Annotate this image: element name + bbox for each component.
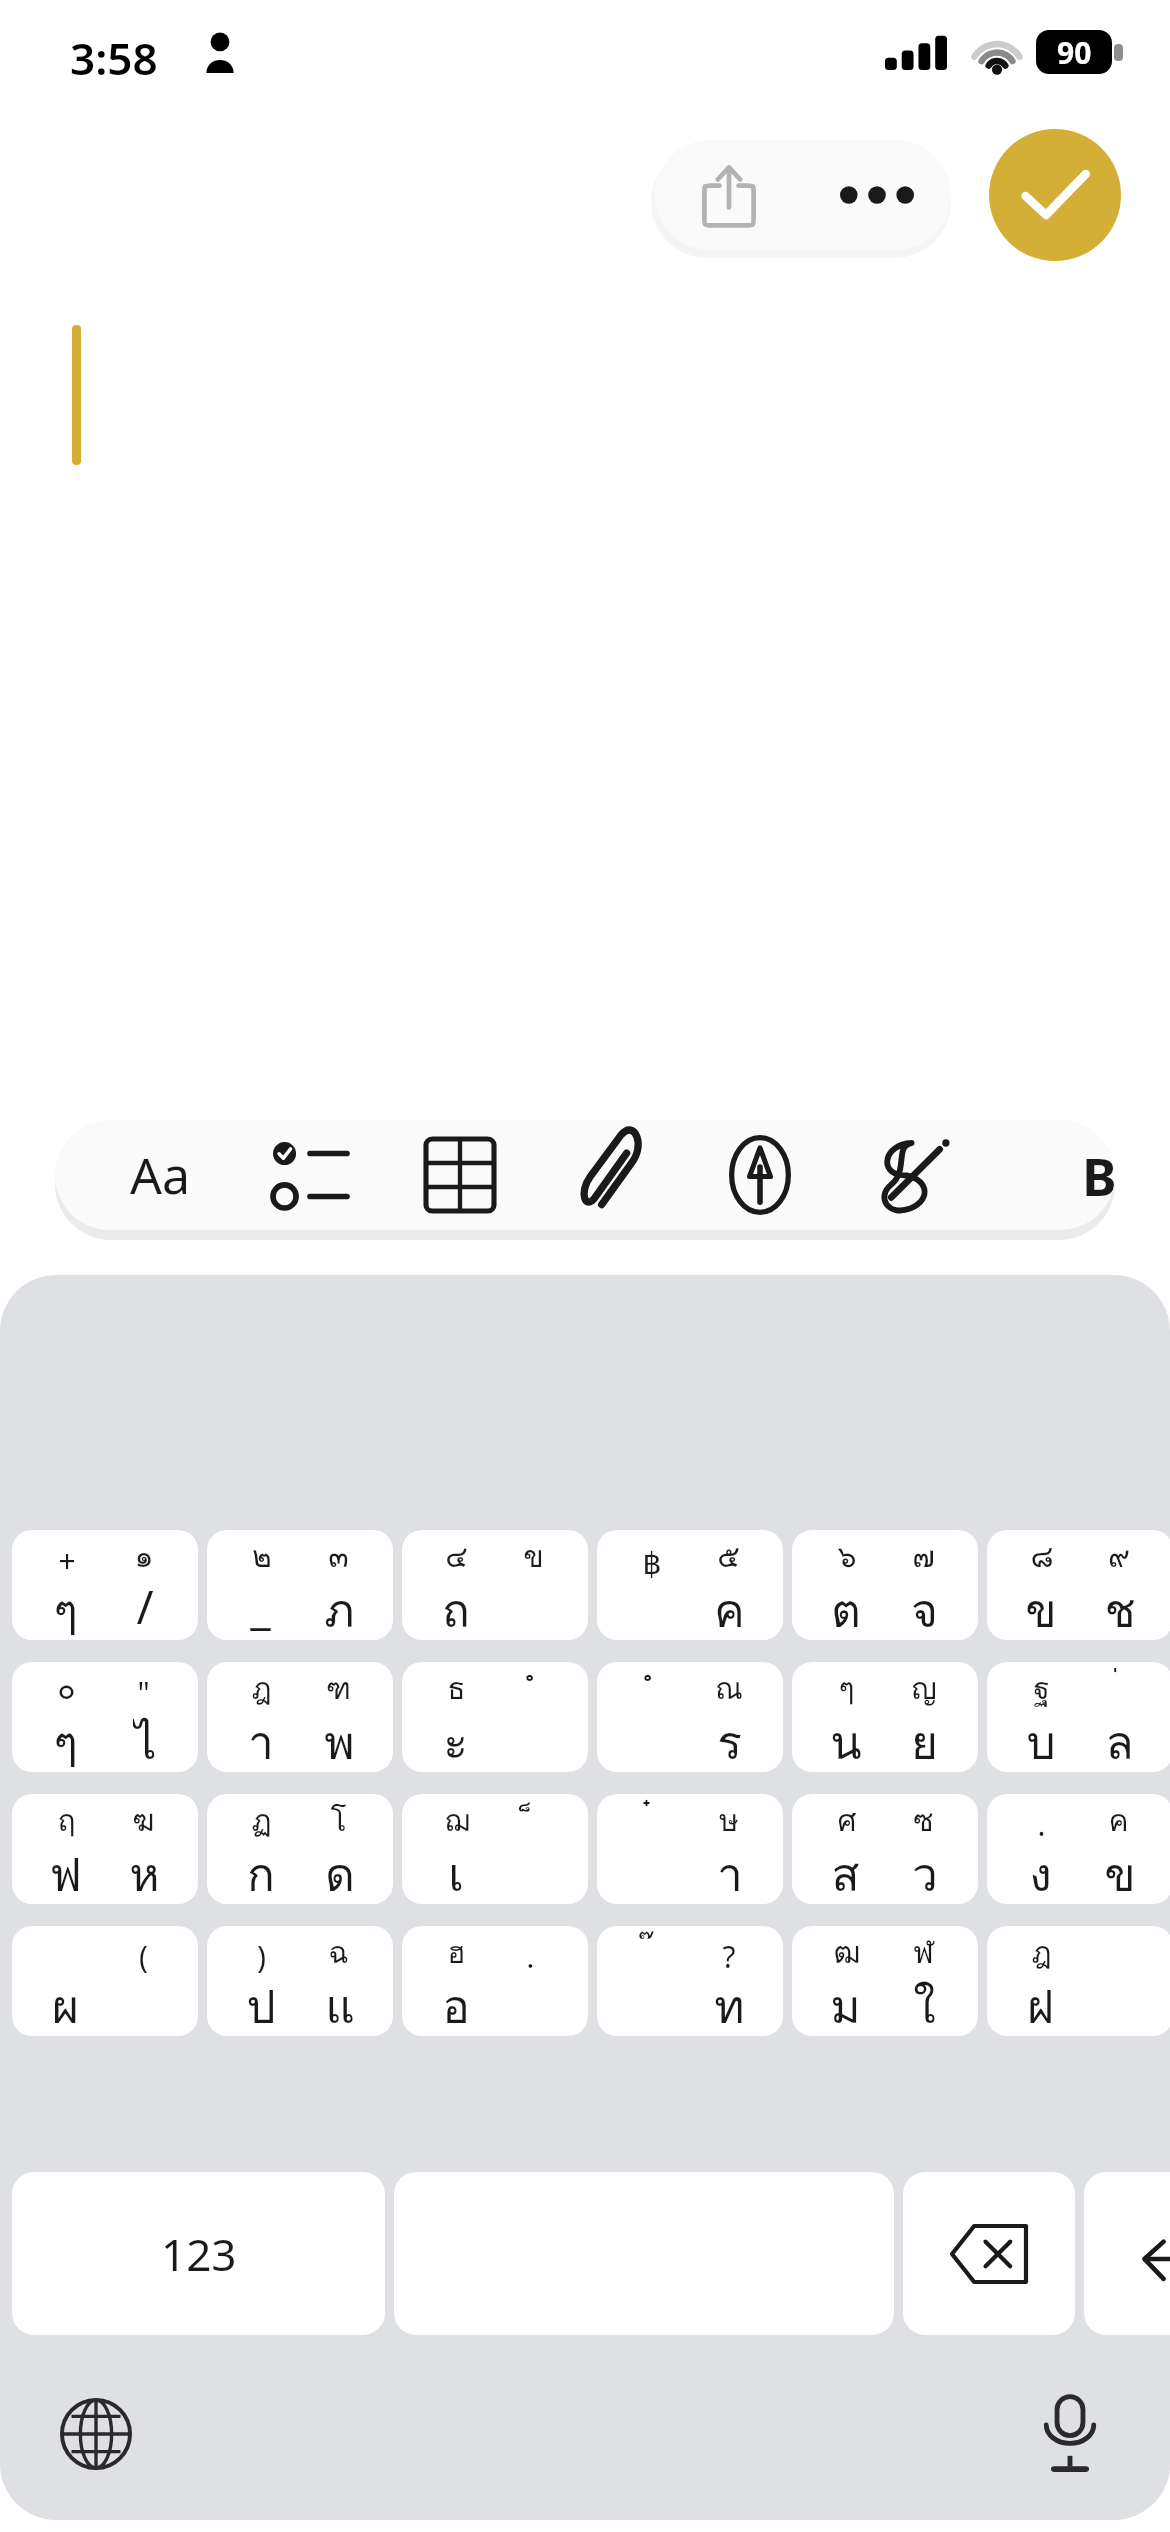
button[interactable]: ๆ	[792, 1662, 978, 1772]
staticText: ฒ	[833, 1929, 861, 1977]
button[interactable]: +	[12, 1530, 198, 1640]
staticText: ษ	[719, 1797, 739, 1845]
staticText: ข	[1025, 1574, 1057, 1638]
staticText: เ	[448, 1838, 464, 1902]
staticText: ๆ	[53, 1706, 78, 1770]
staticText: ๗	[912, 1533, 935, 1581]
button[interactable]: ศ	[792, 1794, 978, 1904]
button[interactable]: Scribble	[835, 1120, 985, 1230]
button[interactable]: ฏ	[207, 1794, 393, 1904]
staticText: ง	[1029, 1838, 1052, 1902]
staticText: ฬ	[913, 1929, 934, 1977]
staticText: ๖	[837, 1533, 857, 1581]
staticText: Aa	[130, 1141, 190, 1209]
button[interactable]: Return	[1084, 2172, 1170, 2335]
button[interactable]: Attach	[535, 1120, 685, 1230]
staticText: ?	[722, 1936, 736, 1977]
staticText: ๆ	[53, 1574, 78, 1638]
button[interactable]: ฌ	[402, 1794, 588, 1904]
staticText: จ	[911, 1574, 938, 1638]
button[interactable]: Switch keyboard	[40, 2378, 152, 2490]
button[interactable]: B	[1000, 1120, 1115, 1230]
staticText: ๆ	[838, 1665, 855, 1713]
staticText: ข	[1104, 1838, 1136, 1902]
staticText: า	[717, 1838, 743, 1902]
staticText: ำ	[248, 1706, 274, 1770]
staticText: ณ	[715, 1665, 743, 1713]
staticText: ว	[912, 1838, 938, 1902]
staticText: ฎ	[1031, 1929, 1052, 1977]
staticText: ฎ	[251, 1665, 272, 1713]
staticText: ซ	[913, 1797, 934, 1845]
staticText: ต	[831, 1574, 861, 1638]
staticText: ฮ	[447, 1929, 466, 1977]
button[interactable]: ๘	[987, 1530, 1170, 1640]
staticText: พ	[324, 1706, 355, 1770]
button[interactable]: Aa	[85, 1120, 235, 1230]
button[interactable]: ฎ	[207, 1662, 393, 1772]
staticText: ภ	[324, 1574, 355, 1638]
staticText: ย	[911, 1706, 938, 1770]
button[interactable]: Markup	[685, 1120, 835, 1230]
staticText: น	[830, 1706, 862, 1770]
button[interactable]: Backspace	[903, 2172, 1075, 2335]
button[interactable]: ๔	[402, 1530, 588, 1640]
button[interactable]: ธ	[402, 1662, 588, 1772]
button[interactable]: More options	[803, 140, 951, 250]
button[interactable]: Dictation	[1014, 2378, 1126, 2490]
staticText: ห	[129, 1838, 160, 1902]
staticText: ๐	[57, 1665, 76, 1713]
staticText: ช	[1104, 1574, 1136, 1638]
button[interactable]: Share	[655, 140, 803, 250]
staticText: )	[257, 1936, 266, 1977]
button[interactable]: ๊	[597, 1926, 783, 2036]
staticText: ท	[714, 1970, 745, 2034]
button[interactable]: ํ	[597, 1662, 783, 1772]
staticText: ๘	[1030, 1533, 1054, 1581]
staticText: ล	[1105, 1706, 1134, 1770]
button[interactable]: ๖	[792, 1530, 978, 1640]
staticText: ๕	[717, 1533, 740, 1581]
staticText: .	[1037, 1804, 1046, 1845]
staticText: ค	[714, 1574, 745, 1638]
button[interactable]: Checklist	[235, 1120, 385, 1230]
staticText: บ	[1026, 1706, 1056, 1770]
staticText: ด	[325, 1838, 355, 1902]
staticText: ฑ	[326, 1665, 351, 1713]
button[interactable]: ฒ	[792, 1926, 978, 2036]
staticText: ๓	[328, 1533, 349, 1581]
staticText: ร	[717, 1706, 742, 1770]
staticText: ฿	[642, 1546, 662, 1581]
staticText: ฆ	[132, 1797, 155, 1845]
staticText: ผ	[52, 1970, 79, 2034]
staticText: (	[139, 1936, 148, 1977]
button[interactable]: Done	[989, 129, 1121, 261]
button[interactable]: ๒	[207, 1530, 393, 1640]
staticText: ๔	[445, 1533, 468, 1581]
staticText: ฟ	[49, 1838, 82, 1902]
button[interactable]: (	[12, 1926, 198, 2036]
staticText: แ	[325, 1970, 355, 2034]
staticText: ฐ	[1033, 1665, 1050, 1713]
staticText: B	[1082, 1140, 1115, 1211]
button[interactable]: ฿	[597, 1530, 783, 1640]
button[interactable]: ฤ	[12, 1794, 198, 1904]
staticText: 90	[1057, 32, 1092, 73]
button[interactable]: ฎ	[987, 1926, 1170, 2036]
staticText: ๑	[134, 1533, 154, 1581]
staticText: ก	[247, 1838, 275, 1902]
button[interactable]: .	[987, 1794, 1170, 1904]
button[interactable]: Table	[385, 1120, 535, 1230]
button[interactable]: ฮ	[402, 1926, 588, 2036]
staticText: ฤ	[57, 1797, 76, 1845]
staticText: ฏ	[251, 1797, 272, 1845]
button[interactable]: ฐ	[987, 1662, 1170, 1772]
button[interactable]: )	[207, 1926, 393, 2036]
button[interactable]: ๐	[12, 1662, 198, 1772]
button[interactable]: ๋	[597, 1794, 783, 1904]
staticText: ม	[830, 1970, 861, 2034]
button[interactable]: 123	[12, 2172, 385, 2335]
staticText: 3:58	[70, 28, 158, 88]
staticText: ศ	[837, 1797, 857, 1845]
